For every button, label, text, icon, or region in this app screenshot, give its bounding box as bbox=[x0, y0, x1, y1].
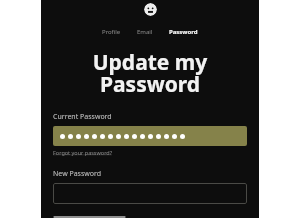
button[interactable]: Password bbox=[168, 27, 199, 37]
staticText: Current Password bbox=[53, 112, 112, 122]
staticText: New Password bbox=[53, 169, 102, 179]
button[interactable]: Email bbox=[136, 27, 154, 37]
staticText: Password bbox=[169, 28, 198, 36]
button[interactable]: New password field bbox=[53, 183, 247, 204]
staticText: Forgot your password? bbox=[53, 149, 113, 156]
button[interactable]: Profile bbox=[101, 27, 122, 37]
button[interactable]: Home logo bbox=[144, 3, 157, 16]
button[interactable]: Forgot your password? bbox=[53, 149, 113, 156]
button[interactable]: Update Password bbox=[53, 216, 126, 218]
button[interactable]: Current password field bbox=[53, 126, 247, 146]
staticText: Email bbox=[137, 28, 153, 36]
staticText: Update my Password bbox=[47, 48, 253, 98]
staticText: Profile bbox=[102, 28, 121, 36]
